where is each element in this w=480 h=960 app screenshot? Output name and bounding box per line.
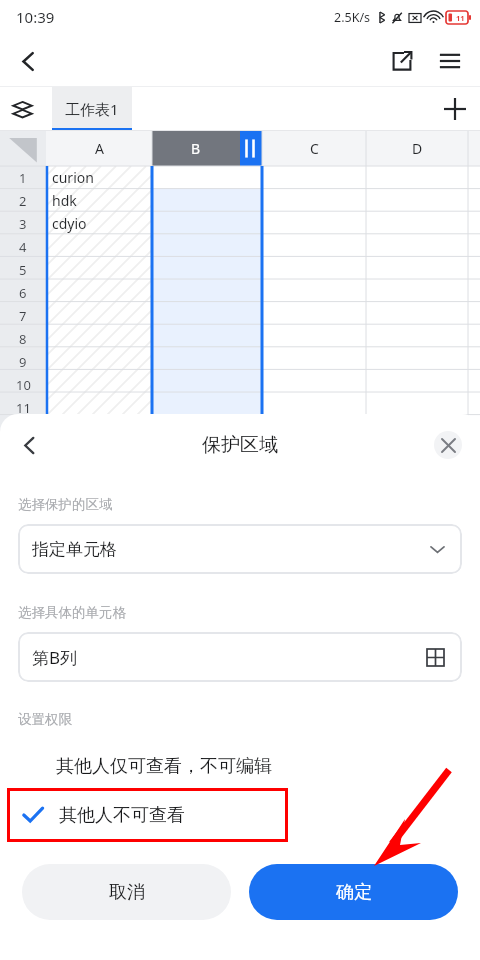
staticText: 设置权限 — [18, 711, 72, 728]
button[interactable]: 取消 — [22, 864, 231, 920]
staticText: 选择保护的区域 — [18, 496, 113, 513]
staticText: 10:39 — [16, 7, 55, 27]
button[interactable]: Menu — [426, 37, 474, 85]
button[interactable]: 指定单元格 — [18, 524, 462, 574]
button[interactable]: Add sheet — [430, 87, 480, 131]
staticText: 10 — [16, 376, 31, 394]
staticText: 7 — [19, 307, 27, 325]
staticText: 其他人仅可查看，不可编辑 — [56, 755, 272, 778]
button[interactable]: 第B列 — [18, 632, 462, 682]
button[interactable]: 工作表1 — [52, 87, 132, 131]
staticText: 选择具体的单元格 — [18, 604, 126, 621]
staticText: 5 — [19, 261, 27, 279]
staticText: D — [412, 139, 423, 158]
button[interactable]: Back — [4, 37, 52, 85]
staticText: 1 — [19, 169, 27, 187]
staticText: 4 — [19, 238, 27, 256]
button[interactable]: 确定 — [249, 864, 458, 920]
button[interactable]: 其他人仅可查看，不可编辑 — [8, 744, 348, 788]
button[interactable]: Share — [378, 37, 426, 85]
staticText: 取消 — [109, 881, 145, 904]
button[interactable]: Back — [6, 422, 52, 468]
staticText: 2 — [19, 192, 27, 210]
staticText: hdk — [52, 191, 77, 210]
staticText: 确定 — [336, 881, 372, 904]
staticText: 其他人不可查看 — [59, 804, 185, 827]
staticText: 9 — [19, 353, 27, 371]
staticText: curion — [52, 168, 94, 187]
staticText: cdyio — [52, 214, 87, 233]
staticText: 3 — [19, 215, 27, 233]
staticText: 8 — [19, 330, 27, 348]
staticText: 保护区域 — [202, 433, 278, 457]
staticText: A — [95, 139, 104, 158]
staticText: 11 — [16, 399, 31, 417]
staticText: 工作表1 — [65, 99, 119, 119]
staticText: 指定单元格 — [32, 539, 117, 560]
staticText: B — [191, 139, 201, 158]
button[interactable]: Sheets — [0, 87, 44, 131]
staticText: 2.5K/s — [334, 9, 371, 26]
staticText: 第B列 — [32, 646, 78, 669]
staticText: 11 — [456, 13, 465, 23]
staticText: 6 — [19, 284, 27, 302]
staticText: C — [310, 139, 319, 158]
button[interactable]: 其他人不可查看 — [7, 788, 288, 842]
button[interactable]: Close — [434, 431, 462, 459]
